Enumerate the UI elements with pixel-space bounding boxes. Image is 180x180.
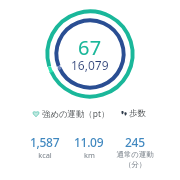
- staticText: 16,079: [71, 57, 109, 73]
- staticText: 11.09: [74, 134, 104, 150]
- button[interactable]: 歩数: [121, 108, 146, 119]
- staticText: km: [84, 150, 95, 160]
- staticText: kcal: [38, 150, 52, 160]
- button[interactable]: 1,587: [14, 134, 76, 160]
- button[interactable]: 強めの運動: [32, 108, 110, 119]
- staticText: 245: [125, 134, 145, 150]
- staticText: 1,587: [30, 134, 60, 150]
- button[interactable]: 245: [104, 134, 166, 169]
- staticText: 強めの運動（pt）: [42, 108, 110, 119]
- staticText: 歩数: [129, 108, 146, 119]
- staticText: 通常の運動 （分）: [116, 150, 154, 169]
- button[interactable]: 11.09: [58, 134, 120, 160]
- staticText: 67: [78, 34, 102, 61]
